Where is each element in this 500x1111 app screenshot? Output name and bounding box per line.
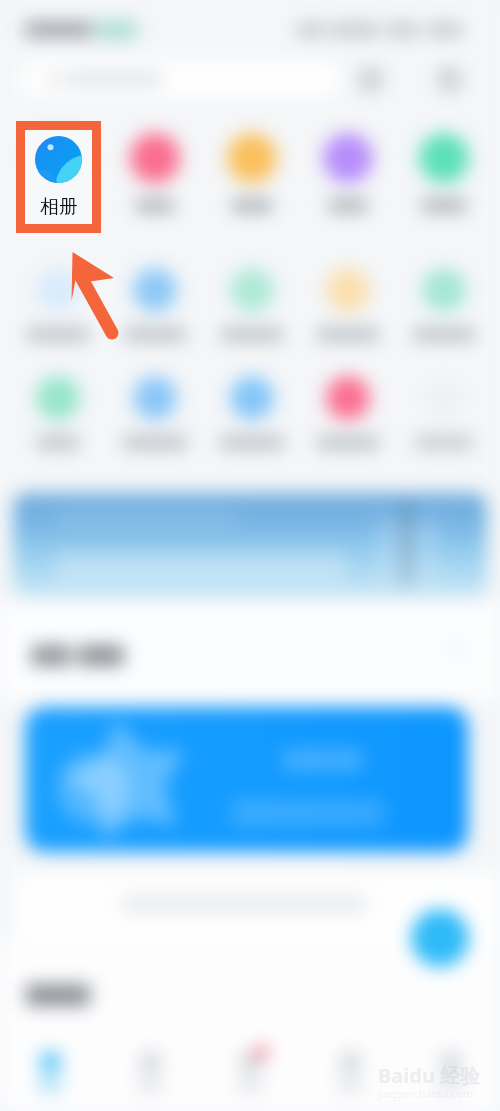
button[interactable]: 记事本 [204,127,300,219]
button[interactable]: 应用市场 [10,262,106,348]
button[interactable]: 华为视频 [396,262,492,348]
button[interactable]: 相册 [10,128,106,220]
button[interactable]: 音乐 [107,127,203,219]
button[interactable]: 应用 [0,1035,100,1111]
button[interactable]: 游戏 [100,1035,200,1111]
button[interactable]: 主题商城 [300,370,396,456]
button[interactable]: 天气 [300,127,396,219]
button[interactable]: 管理 [300,1035,400,1111]
button[interactable]: 运动健康 [300,262,396,348]
button[interactable]: 智慧生活 [204,262,300,348]
staticText: jingyan.baidu.com [378,1086,474,1101]
button[interactable]: 智能遥控 [107,370,203,456]
button[interactable]: More [438,68,461,91]
button[interactable]: 相册 [25,130,92,224]
button[interactable]: 手机管家 [204,370,300,456]
button[interactable]: Featured app [25,707,468,852]
button[interactable]: Add [411,909,469,967]
staticText: Baidu 经验 [378,1062,481,1089]
button[interactable]: 日历 [396,127,492,219]
button[interactable]: Scan [359,68,382,91]
button[interactable]: 软件 [200,1035,300,1111]
button[interactable]: 更多应用 [396,370,492,456]
button[interactable]: 钱包 [10,370,106,456]
button[interactable]: 浏览器 [107,262,203,348]
button[interactable]: Search [20,60,342,98]
button[interactable]: Promotion banner [13,493,487,597]
button[interactable]: 我的 [400,1035,500,1111]
staticText: 相册 [40,195,78,219]
